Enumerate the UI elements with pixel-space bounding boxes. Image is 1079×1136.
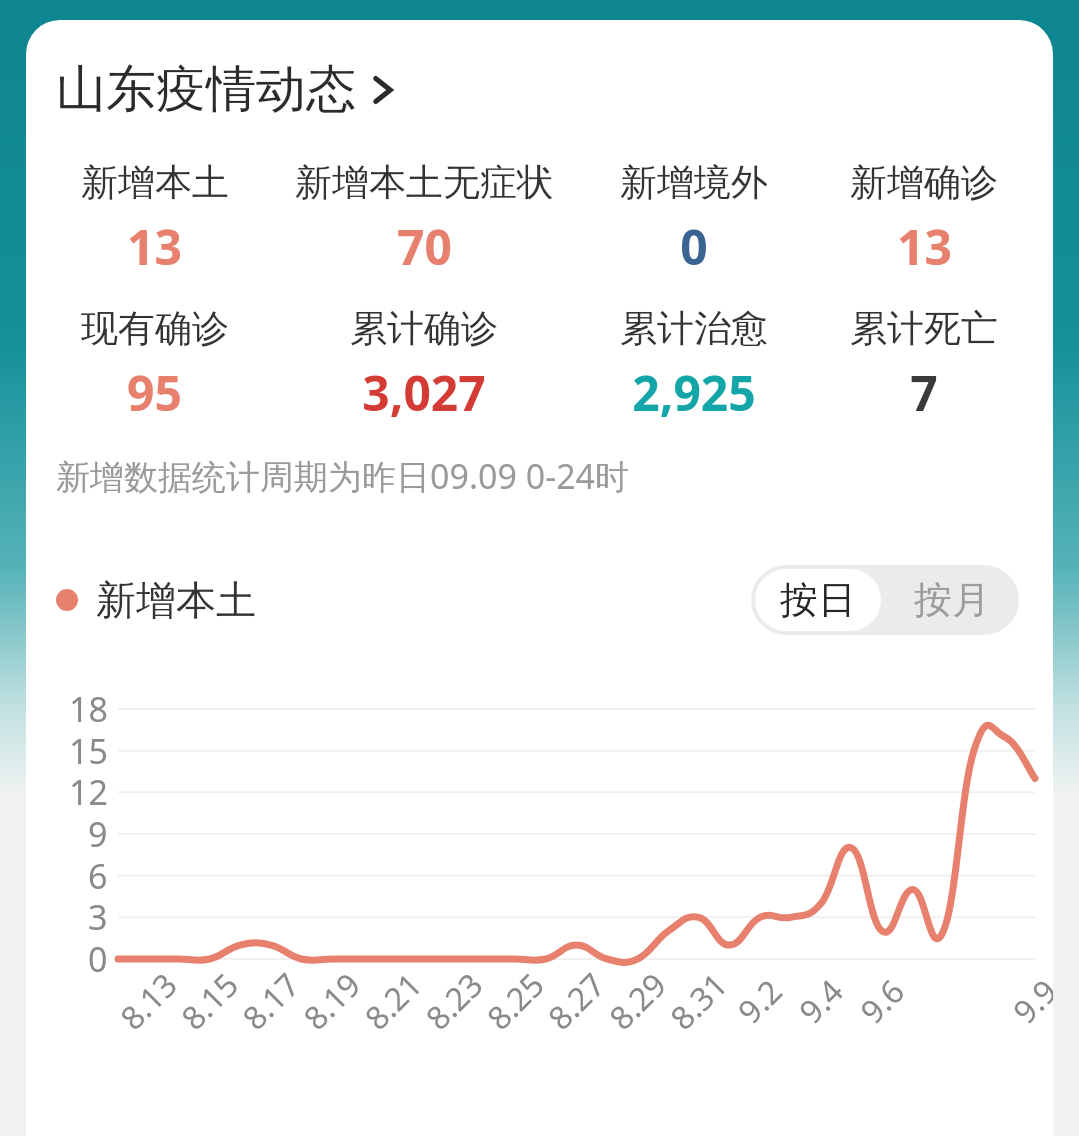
staticText: 0 [680, 214, 708, 279]
staticText: 2,925 [632, 360, 756, 425]
staticText: 山东疫情动态 [56, 58, 356, 121]
staticText: 新增本土 [96, 575, 256, 625]
staticText: 累计死亡 [850, 305, 998, 352]
staticText: 按月 [914, 576, 990, 624]
staticText: 新增本土 [81, 159, 229, 206]
button[interactable]: 新增确诊 [809, 159, 1039, 279]
staticText: 累计治愈 [620, 305, 768, 352]
button[interactable]: 按月 [885, 565, 1019, 635]
staticText: 13 [897, 214, 952, 279]
staticText: 95 [127, 360, 182, 425]
staticText: 70 [397, 214, 452, 279]
button[interactable]: 累计死亡 [809, 305, 1039, 425]
button[interactable]: 新增本土无症状 [269, 159, 579, 279]
button[interactable]: 现有确诊 [40, 305, 269, 425]
button[interactable]: 新增境外 [579, 159, 809, 279]
button[interactable]: 新增本土 [56, 575, 256, 625]
staticText: 3,027 [362, 360, 486, 425]
staticText: 按日 [780, 576, 856, 624]
staticText: 新增数据统计周期为昨日09.09 0-24时 [56, 453, 630, 499]
button[interactable]: 累计治愈 [579, 305, 809, 425]
button[interactable]: 按日 [755, 569, 881, 631]
staticText: 累计确诊 [350, 305, 498, 352]
button[interactable]: 累计确诊 [269, 305, 579, 425]
staticText: 新增境外 [620, 159, 768, 206]
staticText: 新增本土无症状 [295, 159, 554, 206]
staticText: 7 [910, 360, 938, 425]
button[interactable]: 新增本土 [40, 159, 269, 279]
staticText: 13 [127, 214, 182, 279]
staticText: 现有确诊 [81, 305, 229, 352]
button[interactable]: 山东疫情动态 [56, 58, 396, 121]
staticText: 新增确诊 [850, 159, 998, 206]
